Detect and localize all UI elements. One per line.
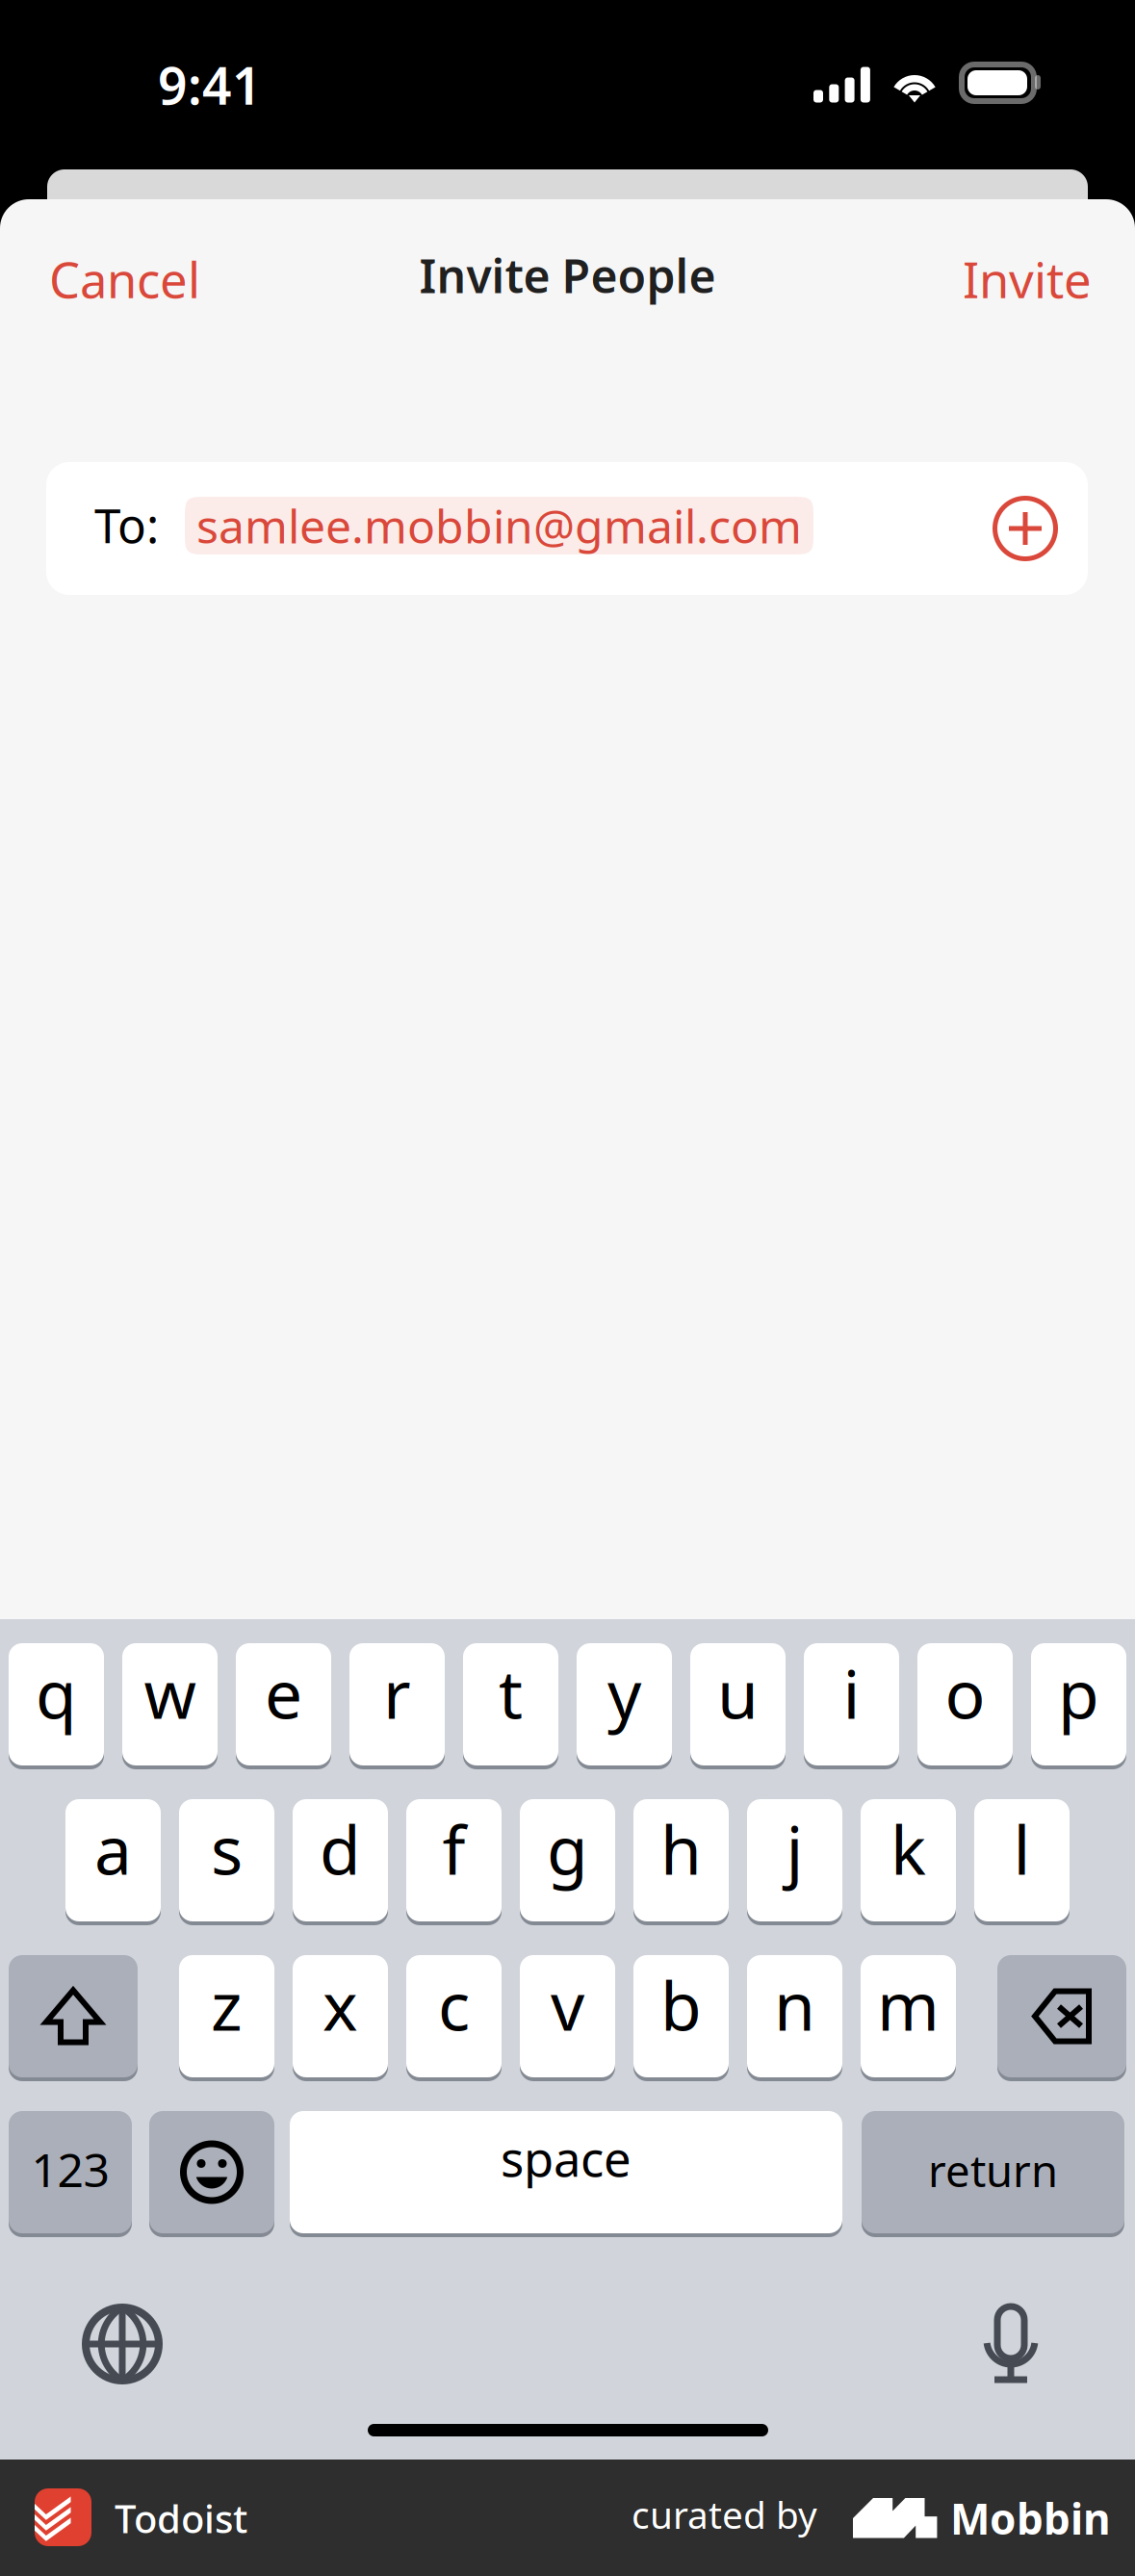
staticText: curated by — [632, 2490, 817, 2539]
button[interactable]: To: — [46, 462, 1088, 595]
staticText: c — [438, 1960, 470, 2049]
button[interactable]: z — [179, 1955, 274, 2081]
staticText: u — [717, 1649, 759, 1737]
button[interactable]: g — [520, 1799, 615, 1925]
staticText: return — [928, 2141, 1058, 2199]
button[interactable]: Add recipient — [991, 494, 1060, 563]
staticText: Mobbin — [950, 2490, 1111, 2546]
staticText: j — [786, 1804, 803, 1893]
staticText: Invite People — [419, 245, 716, 306]
button[interactable]: w — [122, 1643, 218, 1769]
button[interactable]: b — [633, 1955, 729, 2081]
staticText: Todoist — [115, 2493, 247, 2544]
button[interactable]: Dictation — [970, 2304, 1051, 2384]
button[interactable]: Delete — [997, 1955, 1126, 2081]
staticText: r — [383, 1649, 411, 1737]
button[interactable]: q — [9, 1643, 104, 1769]
staticText: 9:41 — [158, 51, 262, 119]
button[interactable]: Cancel — [49, 229, 242, 329]
staticText: l — [1013, 1804, 1031, 1893]
button[interactable]: t — [463, 1643, 558, 1769]
staticText: s — [211, 1804, 243, 1893]
button[interactable]: s — [179, 1799, 274, 1925]
staticText: To: — [94, 493, 159, 556]
button[interactable]: Emoji — [149, 2111, 274, 2237]
staticText: Cancel — [49, 247, 200, 312]
staticText: z — [211, 1960, 243, 2049]
button[interactable]: v — [520, 1955, 615, 2081]
staticText: q — [36, 1649, 77, 1737]
button[interactable]: Next keyboard — [82, 2304, 163, 2384]
staticText: b — [660, 1960, 702, 2049]
staticText: space — [501, 2125, 632, 2190]
staticText: p — [1058, 1649, 1099, 1737]
button[interactable]: space — [290, 2111, 842, 2237]
staticText: i — [843, 1649, 860, 1737]
staticText: x — [322, 1960, 358, 2049]
button[interactable]: Invite — [918, 229, 1092, 329]
button[interactable]: x — [293, 1955, 388, 2081]
button[interactable]: h — [633, 1799, 729, 1925]
button[interactable]: o — [917, 1643, 1013, 1769]
staticText: k — [890, 1804, 926, 1893]
staticText: t — [499, 1649, 523, 1737]
button[interactable]: f — [406, 1799, 502, 1925]
staticText: w — [144, 1649, 196, 1737]
button[interactable]: l — [974, 1799, 1070, 1925]
button[interactable]: n — [747, 1955, 842, 2081]
button[interactable]: return — [862, 2111, 1124, 2237]
button[interactable]: y — [577, 1643, 672, 1769]
button[interactable]: j — [747, 1799, 842, 1925]
staticText: m — [877, 1960, 940, 2049]
staticText: e — [265, 1649, 302, 1737]
staticText: d — [320, 1804, 361, 1893]
staticText: n — [774, 1960, 815, 2049]
staticText: o — [945, 1649, 985, 1737]
staticText: v — [551, 1960, 584, 2049]
staticText: h — [660, 1804, 702, 1893]
button[interactable]: c — [406, 1955, 502, 2081]
staticText: y — [607, 1649, 641, 1737]
button[interactable]: a — [65, 1799, 161, 1925]
staticText: a — [94, 1804, 132, 1893]
button[interactable]: k — [861, 1799, 956, 1925]
button[interactable]: 123 — [9, 2111, 132, 2237]
button[interactable]: u — [690, 1643, 786, 1769]
button[interactable]: p — [1031, 1643, 1126, 1769]
staticText: Invite — [963, 247, 1092, 312]
button[interactable]: e — [236, 1643, 331, 1769]
staticText: 123 — [31, 2139, 109, 2200]
button[interactable]: d — [293, 1799, 388, 1925]
button[interactable]: m — [861, 1955, 956, 2081]
staticText: samlee.mobbin@gmail.com — [196, 495, 802, 556]
button[interactable]: i — [804, 1643, 899, 1769]
staticText: f — [442, 1804, 465, 1893]
button[interactable]: r — [349, 1643, 445, 1769]
staticText: g — [547, 1804, 588, 1893]
button[interactable]: Shift — [9, 1955, 138, 2081]
